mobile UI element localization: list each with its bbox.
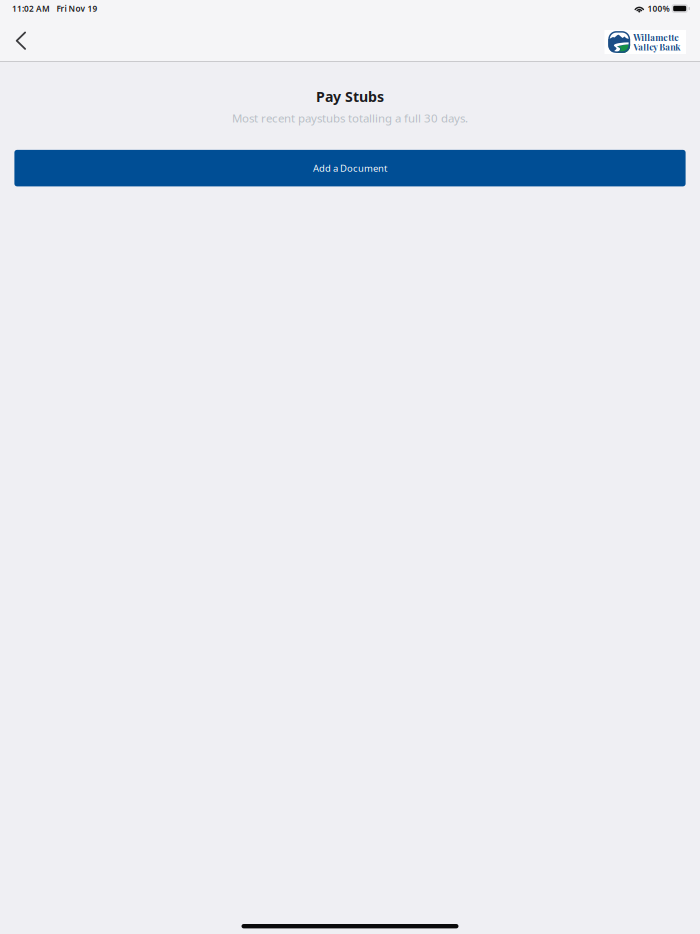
button[interactable]: Willamette Valley Bank xyxy=(604,27,686,51)
staticText: Fri Nov 19 xyxy=(56,3,97,14)
button[interactable]: Back xyxy=(0,17,44,61)
staticText: Pay Stubs xyxy=(316,87,384,106)
staticText: 11:02 AM xyxy=(12,3,50,14)
staticText: Add a Document xyxy=(313,162,387,175)
staticText: 100% xyxy=(648,3,670,14)
staticText: Most recent paystubs totalling a full 30… xyxy=(232,110,468,126)
staticText: Valley Bank xyxy=(633,41,680,53)
staticText: Willamette xyxy=(633,31,679,43)
button[interactable]: Add a Document xyxy=(14,150,686,186)
